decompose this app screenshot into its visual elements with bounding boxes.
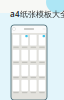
staticText: a4纸张模板大全	[10, 8, 64, 19]
